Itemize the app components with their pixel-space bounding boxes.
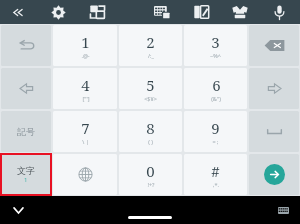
button[interactable]: 5 [119,68,182,109]
button[interactable]: Undo [1,25,51,66]
button[interactable]: Collapse [6,0,32,24]
staticText: # [211,161,220,181]
staticText: 9 [211,118,220,138]
button[interactable]: 3 [184,25,247,66]
button[interactable]: 2 [119,25,182,66]
staticText: 1 [81,32,90,52]
button[interactable]: Space [249,111,299,152]
staticText: 3 [211,32,220,52]
staticText: !+? [147,181,155,188]
button[interactable]: Theme [227,0,253,24]
button[interactable]: 6 [184,68,247,109]
button[interactable]: 8 [119,111,182,152]
staticText: .@- [81,52,90,59]
staticText: ~%^ [210,52,221,59]
staticText: 1 [24,176,28,184]
button[interactable]: Backspace [249,25,299,66]
staticText: 5 [146,75,155,95]
button[interactable]: Keyboard layout [149,0,175,24]
button[interactable]: 0 [119,154,182,195]
button[interactable]: 9 [184,111,247,152]
staticText: 4 [81,75,90,95]
staticText: 7 [81,118,90,138]
button[interactable]: 4 [53,68,117,109]
staticText: ["'] [82,95,90,102]
button[interactable]: Enter [249,154,299,195]
button[interactable]: 1 [53,25,117,66]
staticText: 文字 [17,165,35,176]
staticText: <$¥> [144,95,157,102]
button[interactable]: Move cursor left [1,68,51,109]
staticText: 記号 [17,126,35,137]
staticText: (&") [211,95,221,102]
button[interactable]: Switch input method [84,0,110,24]
staticText: ,*. [213,181,219,188]
button[interactable]: Voice input [266,0,292,24]
button[interactable]: Move cursor right [249,68,299,109]
staticText: 0 [146,161,155,181]
button[interactable]: 7 [53,111,117,152]
staticText: 2 [146,32,155,52]
button[interactable]: Character mode [1,154,51,195]
staticText: \ | [82,138,89,145]
button[interactable]: Notes [188,0,214,24]
button[interactable]: # [184,154,247,195]
staticText: = ; [212,138,219,145]
button[interactable]: Hide keyboard [6,198,30,222]
button[interactable]: Change keyboard [272,199,294,221]
staticText: 8 [146,118,155,138]
button[interactable]: Settings [45,0,71,24]
staticText: ( ) [148,138,153,145]
staticText: /:_ [148,52,154,59]
staticText: 6 [212,75,221,95]
button[interactable]: Symbols [1,111,51,152]
button[interactable]: Change language [53,154,117,195]
